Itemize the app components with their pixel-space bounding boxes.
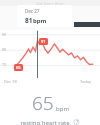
staticText: bpm (33, 17, 47, 25)
staticText: bpm (56, 105, 69, 113)
staticText: 70 (2, 62, 7, 67)
staticText: 65 (16, 65, 21, 70)
staticText: ? (76, 119, 78, 125)
staticText: Today (80, 79, 92, 84)
button[interactable]: resting heart rate (20, 119, 80, 125)
staticText: 81 (25, 16, 33, 25)
staticText: Get Every Beat (36, 1, 64, 6)
staticText: Dec 27 (25, 8, 40, 14)
staticText: 65 (32, 90, 54, 116)
other: Help about resting heart rate (73, 119, 80, 125)
staticText: Dec 18 (4, 79, 17, 84)
button[interactable]: Dec 27 (17, 5, 72, 27)
staticText: resting heart rate (20, 119, 70, 125)
staticText: 91 (41, 39, 46, 44)
staticText: 80 (2, 47, 7, 52)
staticText: 90 (2, 32, 7, 37)
